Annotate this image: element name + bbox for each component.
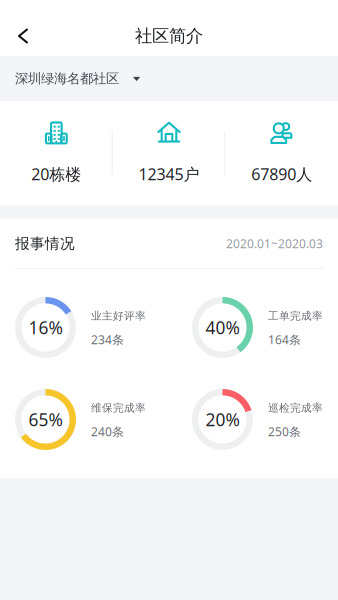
staticText: 维保完成率 (91, 401, 146, 415)
staticText: 250条 (268, 424, 301, 439)
staticText: 业主好评率 (91, 309, 146, 323)
staticText: 240条 (91, 424, 124, 439)
button[interactable]: 深圳绿海名都社区 (0, 56, 338, 101)
staticText: 67890人 (251, 163, 312, 185)
staticText: 报事情况 (15, 234, 75, 252)
staticText: 20% (205, 408, 239, 431)
staticText: 40% (205, 316, 239, 339)
staticText: 12345户 (138, 163, 199, 185)
staticText: 深圳绿海名都社区 (15, 70, 119, 87)
staticText: 164条 (268, 332, 301, 347)
staticText: 16% (28, 316, 62, 339)
staticText: 20栋楼 (31, 163, 81, 185)
staticText: 2020.01~2020.03 (226, 235, 323, 251)
staticText: 65% (28, 408, 62, 431)
button[interactable]: Back (0, 19, 41, 52)
staticText: 工单完成率 (268, 309, 323, 323)
staticText: 社区简介 (135, 25, 203, 47)
staticText: 234条 (91, 332, 124, 347)
staticText: 巡检完成率 (268, 401, 323, 415)
